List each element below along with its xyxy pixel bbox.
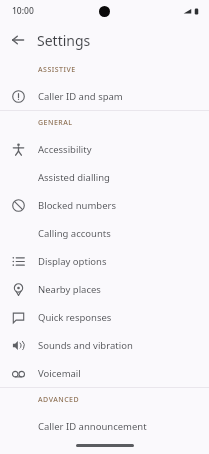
button[interactable]: Display options [0, 247, 209, 275]
staticText: Assisted dialling [38, 171, 110, 184]
staticText: GENERAL [38, 118, 73, 128]
staticText: Blocked numbers [38, 199, 116, 212]
staticText: Voicemail [38, 367, 81, 380]
button[interactable]: Quick responses [0, 303, 209, 331]
button[interactable]: Blocked numbers [0, 191, 209, 219]
button[interactable]: Assisted dialling [0, 163, 209, 191]
staticText: Display options [38, 255, 107, 268]
staticText: Caller ID and spam [38, 90, 123, 103]
button[interactable]: Voicemail [0, 359, 209, 387]
staticText: Nearby places [38, 283, 101, 296]
button[interactable]: Accessibility [0, 135, 209, 163]
staticText: Calling accounts [38, 227, 111, 240]
staticText: Caller ID announcement [38, 420, 147, 433]
button[interactable]: Calling accounts [0, 219, 209, 247]
button[interactable]: Sounds and vibration [0, 331, 209, 359]
staticText: 10:00 [12, 5, 34, 17]
staticText: Accessibility [38, 143, 92, 156]
staticText: Settings [37, 31, 91, 50]
button[interactable]: Nearby places [0, 275, 209, 303]
staticText: ASSISTIVE [38, 65, 76, 75]
staticText: Quick responses [38, 311, 112, 324]
staticText: Sounds and vibration [38, 339, 133, 352]
button[interactable]: Back [5, 27, 31, 53]
button[interactable]: Caller ID announcement [0, 412, 209, 440]
button[interactable]: Caller ID and spam [0, 82, 209, 110]
staticText: ADVANCED [38, 395, 80, 405]
